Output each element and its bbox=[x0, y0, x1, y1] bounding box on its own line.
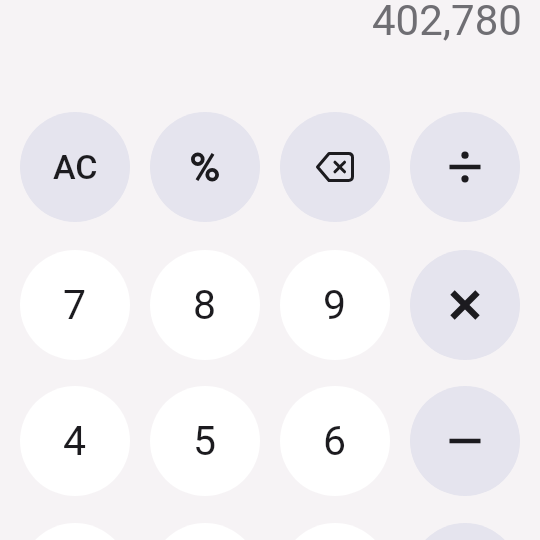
button[interactable]: 1 bbox=[20, 523, 130, 540]
button[interactable]: 6 bbox=[280, 386, 390, 496]
button[interactable]: 7 bbox=[20, 250, 130, 360]
staticText: 7 bbox=[63, 281, 87, 329]
staticText: AC bbox=[53, 147, 98, 187]
staticText: 4 bbox=[63, 417, 87, 465]
staticText: 8 bbox=[193, 281, 217, 329]
button[interactable]: 9 bbox=[280, 250, 390, 360]
button[interactable]: 5 bbox=[150, 386, 260, 496]
staticText: 5 bbox=[193, 417, 217, 465]
button[interactable]: AC bbox=[20, 112, 130, 222]
button[interactable] bbox=[410, 112, 520, 222]
button[interactable] bbox=[410, 523, 520, 540]
button[interactable] bbox=[410, 250, 520, 360]
button[interactable] bbox=[150, 112, 260, 222]
button[interactable] bbox=[410, 386, 520, 496]
button[interactable]: 2 bbox=[150, 523, 260, 540]
staticText: 402,780 bbox=[372, 0, 522, 45]
staticText: 6 bbox=[323, 417, 347, 465]
button[interactable] bbox=[280, 112, 390, 222]
button[interactable]: 4 bbox=[20, 386, 130, 496]
staticText: 9 bbox=[323, 281, 347, 329]
button[interactable]: 8 bbox=[150, 250, 260, 360]
button[interactable]: 3 bbox=[280, 523, 390, 540]
